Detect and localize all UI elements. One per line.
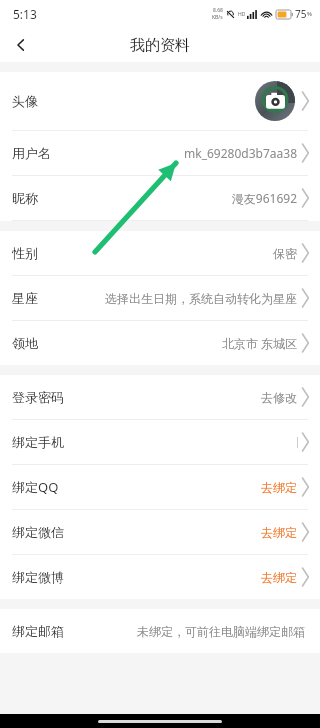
staticText: 去绑定 [261,480,297,495]
staticText: HD [238,11,246,18]
staticText: 去绑定 [261,570,297,585]
button[interactable]: 星座 [0,276,320,320]
staticText: 绑定QQ [12,478,59,496]
staticText: 漫友961692 [231,190,297,206]
button[interactable]: 领地 [0,321,320,365]
staticText: 75 [295,7,307,21]
staticText: 选择出生日期，系统自动转化为星座 [105,291,297,306]
staticText: 用户名 [12,145,51,161]
staticText: 绑定微信 [12,524,64,540]
button[interactable]: 绑定微博 [0,555,320,599]
staticText: % [307,10,312,18]
button[interactable]: 绑定QQ [0,465,320,509]
staticText: 登录密码 [12,389,64,405]
staticText: 未绑定，可前往电脑端绑定邮箱 [137,624,305,639]
staticText: 绑定微博 [12,569,64,585]
staticText: 头像 [12,93,38,109]
staticText: 星座 [12,290,38,306]
staticText: 保密 [273,246,297,261]
button[interactable]: 绑定微信 [0,510,320,554]
staticText: 8.68 [213,7,223,14]
button[interactable]: 头像 [0,72,320,130]
staticText: 绑定邮箱 [12,623,64,639]
staticText: 北京市 东城区 [221,335,297,351]
staticText: 5:13 [13,6,37,22]
staticText: 性别 [12,245,38,261]
staticText: 昵称 [12,190,38,206]
button[interactable]: 用户名 [0,131,320,175]
staticText: 绑定手机 [12,434,64,450]
staticText: KB/s [212,14,223,21]
button[interactable]: 昵称 [0,176,320,220]
button[interactable]: 绑定邮箱 [0,609,320,653]
button[interactable]: Back [0,28,40,62]
button[interactable]: 绑定手机 [0,420,320,464]
staticText: 去绑定 [261,525,297,540]
staticText: 领地 [12,335,38,351]
staticText: 去修改 [261,390,297,405]
staticText: 我的资料 [130,36,190,55]
button[interactable]: 性别 [0,231,320,275]
staticText: mk_69280d3b7aa38 [184,145,297,161]
button[interactable]: 登录密码 [0,375,320,419]
